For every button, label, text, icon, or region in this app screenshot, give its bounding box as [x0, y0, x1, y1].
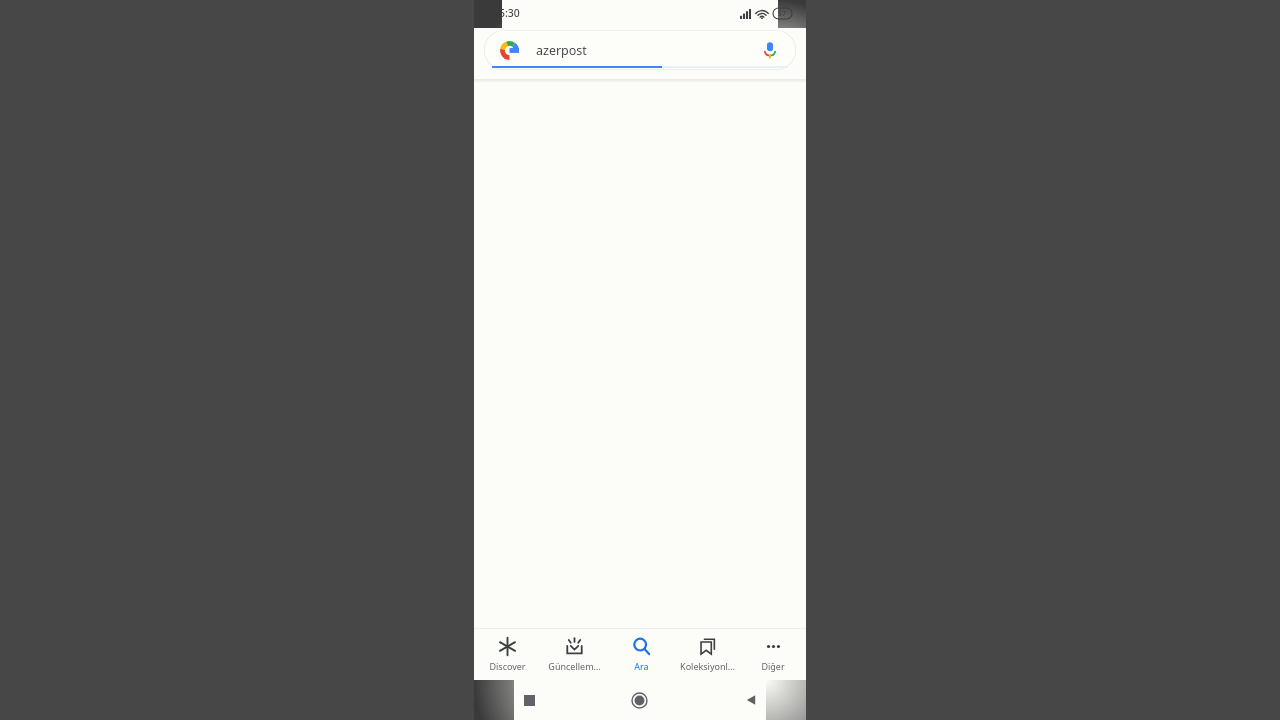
staticText: Koleksiyonl…	[680, 660, 735, 672]
staticText: Güncellem…	[548, 660, 601, 672]
staticText: Diğer	[761, 660, 785, 672]
button[interactable]: Discover	[474, 628, 541, 680]
button[interactable]: Güncellem…	[541, 628, 608, 680]
button[interactable]: Ara	[608, 628, 674, 680]
button[interactable]: Koleksiyonl…	[674, 628, 740, 680]
staticText: azerpost	[536, 42, 587, 59]
button[interactable]: Recents	[474, 680, 584, 720]
button[interactable]: Back	[695, 680, 806, 720]
staticText: Discover	[489, 660, 526, 672]
button[interactable]: azerpost	[484, 30, 796, 70]
button[interactable]: Home	[584, 680, 695, 720]
staticText: Ara	[634, 660, 649, 672]
button[interactable]: Diğer	[740, 628, 806, 680]
staticText: 15:30	[493, 6, 520, 20]
staticText: 57	[778, 9, 787, 19]
button[interactable]: Voice search	[758, 38, 782, 62]
